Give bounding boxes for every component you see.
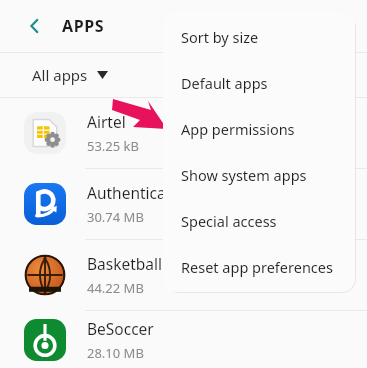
button[interactable]: Default apps <box>163 60 355 106</box>
staticText: Reset app preferences <box>181 257 333 277</box>
staticText: Airtel <box>87 111 126 132</box>
staticText: Sort by size <box>181 27 259 47</box>
button[interactable]: Special access <box>163 198 355 244</box>
staticText: 53.25 kB <box>87 137 140 155</box>
button[interactable]: App permissions <box>163 106 355 152</box>
staticText: APPS <box>62 15 105 37</box>
staticText: 44.22 MB <box>87 279 144 297</box>
staticText: App permissions <box>181 119 295 139</box>
button[interactable]: Reset app preferences <box>163 244 355 290</box>
button[interactable]: Basketball Stars <box>0 240 367 310</box>
staticText: Authenticator <box>87 182 188 203</box>
staticText: BeSoccer <box>87 318 154 339</box>
button[interactable]: Back <box>18 9 52 43</box>
staticText: Show system apps <box>181 165 307 185</box>
button[interactable]: All apps <box>24 60 116 90</box>
button[interactable]: Sort by size <box>163 14 355 60</box>
staticText: Special access <box>181 211 277 231</box>
button[interactable]: Airtel <box>0 98 367 168</box>
button[interactable]: Show system apps <box>163 152 355 198</box>
staticText: Basketball Stars <box>87 253 203 274</box>
staticText: 30.74 MB <box>87 208 144 226</box>
staticText: Default apps <box>181 73 268 93</box>
button[interactable]: Authenticator <box>0 169 367 239</box>
button[interactable]: BeSoccer <box>0 311 367 368</box>
staticText: 28.10 MB <box>87 344 144 362</box>
staticText: All apps <box>32 65 88 85</box>
